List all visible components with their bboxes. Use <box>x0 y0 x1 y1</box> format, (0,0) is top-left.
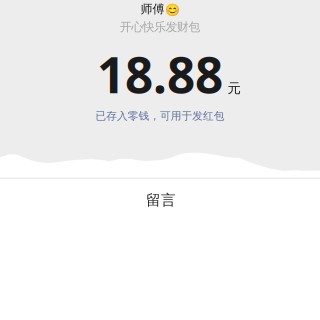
staticText: 留言 <box>146 191 176 209</box>
staticText: 元 <box>227 80 240 96</box>
button[interactable]: 已存入零钱，可用于发红包 <box>0 109 320 123</box>
staticText: 师傅😊 <box>140 2 179 16</box>
staticText: 18.88 <box>97 41 223 107</box>
staticText: 开心快乐发财包 <box>120 20 200 34</box>
button[interactable]: 留言 <box>1 191 320 209</box>
staticText: 已存入零钱，可用于发红包 <box>95 109 225 122</box>
